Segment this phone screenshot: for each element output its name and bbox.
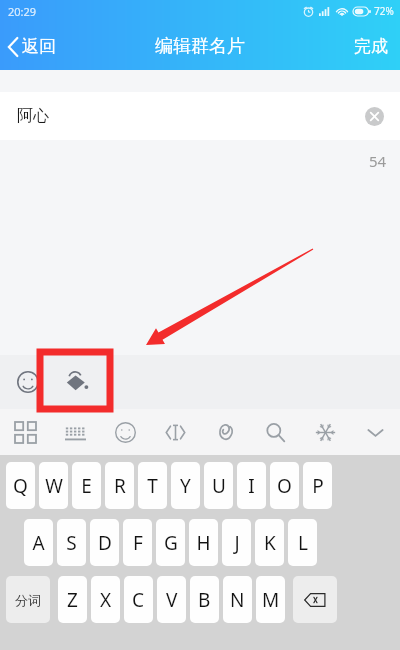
- button[interactable]: L: [288, 519, 317, 566]
- button[interactable]: M: [256, 576, 285, 623]
- staticText: A: [32, 530, 45, 556]
- button[interactable]: 阿心: [0, 92, 400, 140]
- staticText: V: [166, 587, 178, 613]
- button[interactable]: Apps: [0, 409, 50, 455]
- button[interactable]: B: [190, 576, 219, 623]
- button[interactable]: 返回: [0, 30, 66, 63]
- button[interactable]: A: [24, 519, 53, 566]
- staticText: Q: [13, 473, 28, 499]
- staticText: T: [147, 473, 158, 499]
- staticText: U: [212, 473, 226, 499]
- button[interactable]: N: [223, 576, 252, 623]
- button[interactable]: H: [189, 519, 218, 566]
- button[interactable]: O: [270, 462, 299, 509]
- button[interactable]: Effects: [300, 409, 350, 455]
- staticText: Z: [67, 587, 78, 613]
- staticText: E: [81, 473, 92, 499]
- button[interactable]: Clear text: [360, 102, 388, 130]
- button[interactable]: C: [124, 576, 153, 623]
- button[interactable]: Collapse: [350, 409, 400, 455]
- button[interactable]: E: [72, 462, 101, 509]
- staticText: R: [114, 473, 126, 499]
- staticText: 阿心: [17, 106, 49, 126]
- button[interactable]: G: [156, 519, 185, 566]
- button[interactable]: Emoji: [6, 360, 50, 404]
- staticText: I: [248, 473, 255, 499]
- staticText: H: [196, 530, 211, 556]
- button[interactable]: Text cursor: [150, 409, 200, 455]
- button[interactable]: Y: [171, 462, 200, 509]
- button[interactable]: K: [255, 519, 284, 566]
- button[interactable]: Background color: [54, 360, 98, 404]
- staticText: O: [277, 473, 292, 499]
- button[interactable]: F: [123, 519, 152, 566]
- button[interactable]: P: [303, 462, 332, 509]
- staticText: K: [264, 530, 276, 556]
- button[interactable]: J: [222, 519, 251, 566]
- staticText: N: [230, 587, 245, 613]
- button[interactable]: U: [204, 462, 233, 509]
- staticText: B: [198, 587, 211, 613]
- staticText: W: [45, 473, 63, 499]
- button[interactable]: S: [57, 519, 86, 566]
- staticText: C: [132, 587, 145, 613]
- staticText: 54: [369, 151, 387, 171]
- button[interactable]: Keyboard: [50, 409, 100, 455]
- button[interactable]: Z: [58, 576, 87, 623]
- staticText: 72%: [374, 4, 394, 18]
- button[interactable]: Q: [6, 462, 35, 509]
- staticText: M: [262, 587, 280, 613]
- staticText: X: [100, 587, 112, 613]
- staticText: S: [66, 530, 77, 556]
- button[interactable]: I: [237, 462, 266, 509]
- staticText: J: [234, 530, 240, 556]
- button[interactable]: 完成: [342, 28, 400, 65]
- button[interactable]: Emoji: [100, 409, 150, 455]
- button[interactable]: Backspace: [293, 576, 337, 623]
- staticText: 分词: [15, 592, 41, 608]
- staticText: 编辑群名片: [155, 35, 245, 58]
- staticText: G: [164, 530, 178, 556]
- staticText: P: [312, 473, 324, 499]
- staticText: Y: [180, 473, 191, 499]
- button[interactable]: V: [157, 576, 186, 623]
- button[interactable]: X: [91, 576, 120, 623]
- button[interactable]: Attach: [200, 409, 250, 455]
- button[interactable]: T: [138, 462, 167, 509]
- button[interactable]: D: [90, 519, 119, 566]
- staticText: D: [98, 530, 112, 556]
- staticText: F: [133, 530, 143, 556]
- staticText: 返回: [22, 36, 56, 57]
- button[interactable]: W: [39, 462, 68, 509]
- button[interactable]: R: [105, 462, 134, 509]
- staticText: 20:29: [8, 4, 37, 19]
- button[interactable]: Search: [250, 409, 300, 455]
- staticText: L: [298, 530, 308, 556]
- button[interactable]: 分词: [6, 576, 50, 623]
